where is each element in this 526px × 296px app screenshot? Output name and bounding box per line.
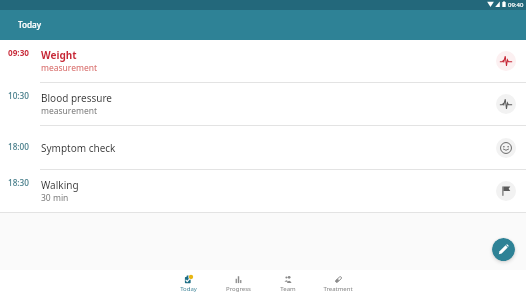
staticText: Walking bbox=[41, 178, 79, 192]
staticText: Progress bbox=[226, 285, 251, 293]
staticText: 09:30 bbox=[8, 47, 30, 58]
button[interactable]: 18:30 bbox=[0, 170, 526, 213]
staticText: Team bbox=[280, 285, 296, 293]
button[interactable]: Team bbox=[263, 270, 313, 296]
button[interactable]: 10:30 bbox=[0, 83, 526, 126]
staticText: 10:30 bbox=[8, 90, 29, 101]
button[interactable]: Progress bbox=[213, 270, 263, 296]
button[interactable]: Treatment bbox=[313, 270, 363, 296]
button[interactable]: 09:30 bbox=[0, 40, 526, 83]
staticText: 30 min bbox=[41, 192, 69, 204]
button[interactable]: Today bbox=[163, 270, 213, 296]
staticText: Today bbox=[18, 19, 42, 30]
button[interactable]: Add entry bbox=[492, 238, 515, 261]
staticText: Weight bbox=[41, 48, 77, 62]
staticText: Symptom check bbox=[41, 141, 116, 155]
staticText: 09:40 bbox=[508, 1, 524, 9]
staticText: 18:00 bbox=[8, 141, 29, 152]
button[interactable]: 18:00 bbox=[0, 126, 526, 170]
staticText: Today bbox=[180, 285, 197, 293]
staticText: measurement bbox=[41, 62, 98, 74]
staticText: Blood pressure bbox=[41, 91, 112, 105]
staticText: measurement bbox=[41, 105, 98, 117]
staticText: 18:30 bbox=[8, 177, 29, 188]
staticText: Treatment bbox=[323, 285, 353, 293]
